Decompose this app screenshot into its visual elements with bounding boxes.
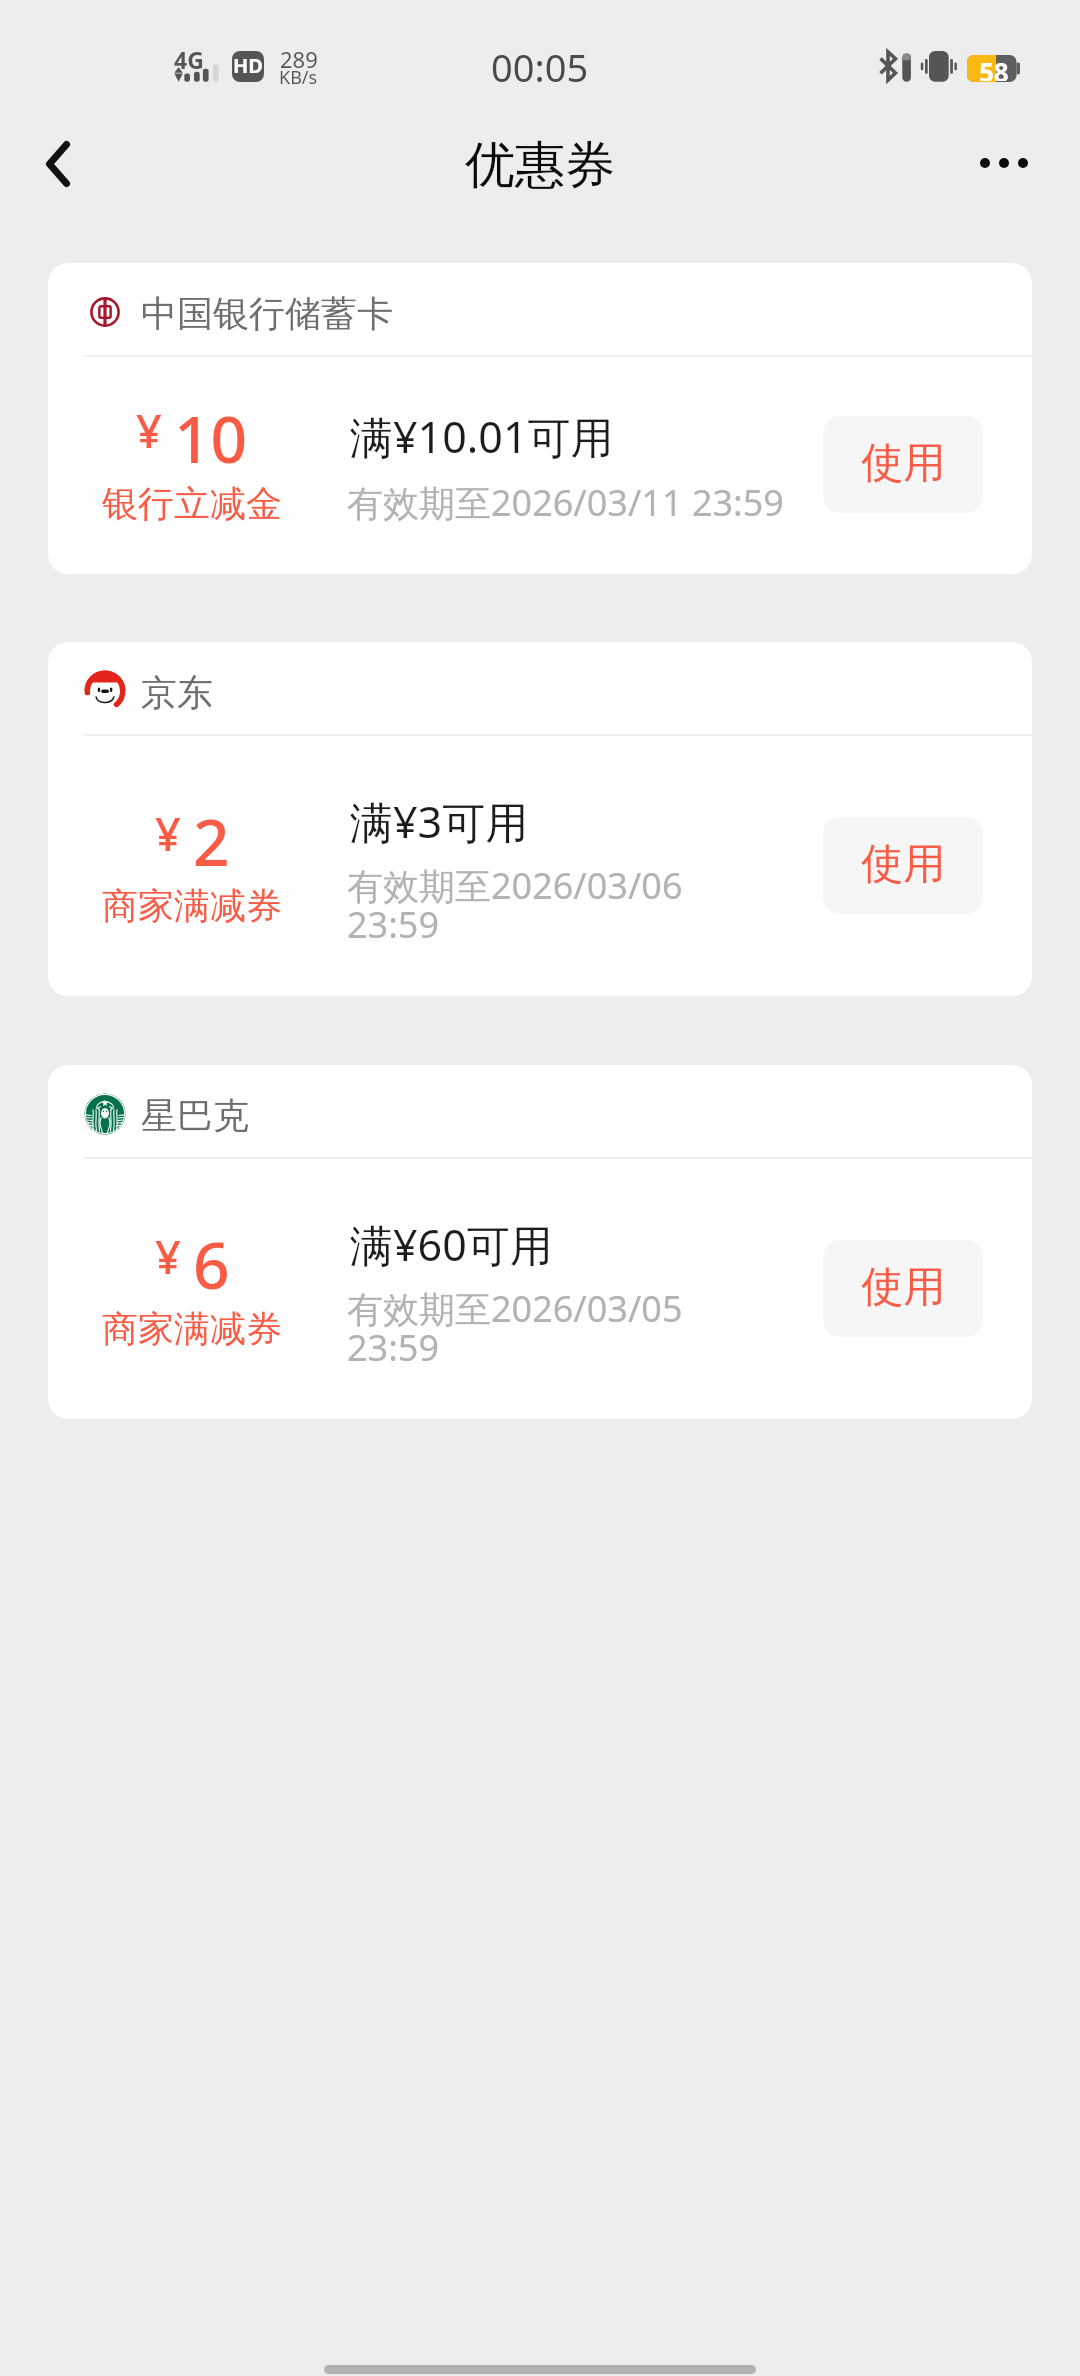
staticText: ¥	[155, 803, 181, 864]
staticText: ¥	[136, 400, 162, 461]
button[interactable]: 使用	[823, 817, 983, 914]
staticText: 4G	[174, 44, 204, 75]
staticText: 中国银行储蓄卡	[141, 291, 393, 336]
button[interactable]: 星巴克	[48, 1065, 1032, 1419]
button[interactable]: 京东	[48, 642, 1032, 996]
staticText: KB/s	[279, 65, 318, 90]
staticText: 6	[193, 1221, 230, 1308]
staticText: 银行立减金	[102, 481, 282, 526]
staticText: HD	[233, 52, 263, 79]
staticText: 10	[174, 395, 248, 482]
staticText: 满¥3可用	[350, 792, 529, 851]
staticText: 使用	[861, 1261, 945, 1314]
button[interactable]: 使用	[823, 416, 983, 513]
button[interactable]: 使用	[823, 1240, 983, 1337]
staticText: 星巴克	[141, 1093, 249, 1138]
button[interactable]: Back	[16, 122, 100, 206]
staticText: 有效期至2026/03/06 23:59	[347, 861, 683, 949]
button[interactable]: More options	[962, 121, 1046, 205]
button[interactable]: 中国银行储蓄卡	[48, 263, 1032, 574]
staticText: 满¥60可用	[350, 1215, 553, 1274]
staticText: 00:05	[491, 41, 589, 93]
staticText: 商家满减券	[102, 1306, 282, 1351]
staticText: 58	[979, 54, 1009, 81]
staticText: 使用	[861, 838, 945, 891]
staticText: 有效期至2026/03/05 23:59	[347, 1284, 683, 1372]
staticText: 京东	[141, 670, 213, 715]
staticText: 使用	[861, 437, 945, 490]
staticText: 289	[280, 44, 318, 74]
staticText: 商家满减券	[102, 883, 282, 928]
staticText: 满¥10.01可用	[350, 407, 614, 466]
staticText: 2	[193, 798, 230, 885]
staticText: ¥	[155, 1226, 181, 1287]
staticText: 优惠券	[465, 134, 615, 197]
staticText: 有效期至2026/03/11 23:59	[347, 478, 784, 527]
